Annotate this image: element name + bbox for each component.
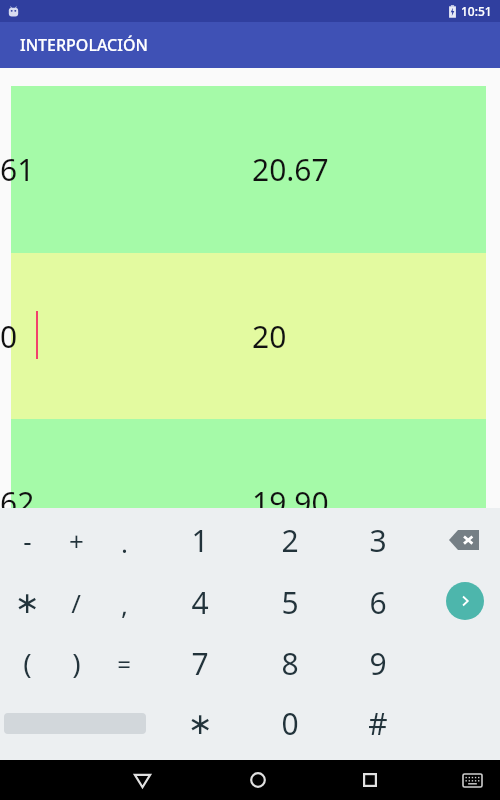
staticText: 5 [281, 582, 299, 623]
button[interactable]: ∗ [172, 697, 228, 749]
staticText: 0 [0, 316, 18, 357]
staticText: = [117, 647, 131, 680]
button[interactable]: - [0, 514, 55, 566]
button[interactable]: 9 [350, 637, 406, 689]
staticText: 61 [0, 149, 35, 190]
staticText: 62 [0, 482, 35, 523]
button[interactable]: ( [0, 637, 55, 689]
button[interactable]: Enter [446, 582, 484, 620]
staticText: + [69, 523, 84, 558]
button[interactable]: 0 [11, 253, 486, 419]
staticText: ( [23, 644, 32, 682]
staticText: . [121, 525, 128, 560]
staticText: - [23, 523, 32, 558]
staticText: 0 [281, 703, 299, 744]
button[interactable]: 5 [262, 576, 318, 628]
button[interactable]: 2 [262, 514, 318, 566]
button[interactable]: , [96, 578, 152, 630]
staticText: 3 [369, 520, 387, 561]
button[interactable]: Delete [444, 520, 484, 560]
staticText: , [121, 587, 128, 622]
staticText: 4 [191, 582, 209, 623]
button[interactable]: . [96, 516, 152, 568]
button[interactable]: 0 [262, 697, 318, 749]
button[interactable]: + [48, 514, 104, 566]
button[interactable]: Recents [348, 760, 392, 800]
button[interactable]: 1 [172, 514, 228, 566]
button[interactable]: 61 [11, 86, 486, 253]
staticText: INTERPOLACIÓN [20, 34, 148, 56]
staticText: ) [72, 644, 81, 682]
button[interactable]: Hide keyboard [454, 762, 490, 798]
button[interactable]: 3 [350, 514, 406, 566]
button[interactable]: 62 [11, 419, 486, 586]
button[interactable]: 6 [350, 576, 406, 628]
button[interactable]: Home [236, 760, 280, 800]
button[interactable]: 7 [172, 637, 228, 689]
staticText: 20.67 [252, 149, 329, 190]
button[interactable]: = [96, 637, 152, 689]
staticText: 1 [191, 520, 209, 561]
button[interactable]: ∗ [0, 576, 55, 628]
staticText: 7 [191, 643, 209, 684]
staticText: 2 [281, 520, 299, 561]
staticText: 10:51 [461, 3, 492, 19]
staticText: ∗ [187, 706, 213, 741]
button[interactable]: Back [120, 760, 164, 800]
button[interactable]: # [350, 697, 406, 749]
staticText: ∗ [14, 585, 40, 620]
staticText: 8 [281, 643, 299, 684]
staticText: # [368, 703, 388, 744]
staticText: / [71, 585, 81, 620]
staticText: 19.90 [252, 482, 329, 523]
button[interactable]: ) [48, 637, 104, 689]
staticText: 20 [252, 316, 287, 357]
button[interactable]: 8 [262, 637, 318, 689]
button[interactable]: / [48, 576, 104, 628]
staticText: 9 [369, 643, 387, 684]
button[interactable]: 4 [172, 576, 228, 628]
staticText: 6 [369, 582, 387, 623]
